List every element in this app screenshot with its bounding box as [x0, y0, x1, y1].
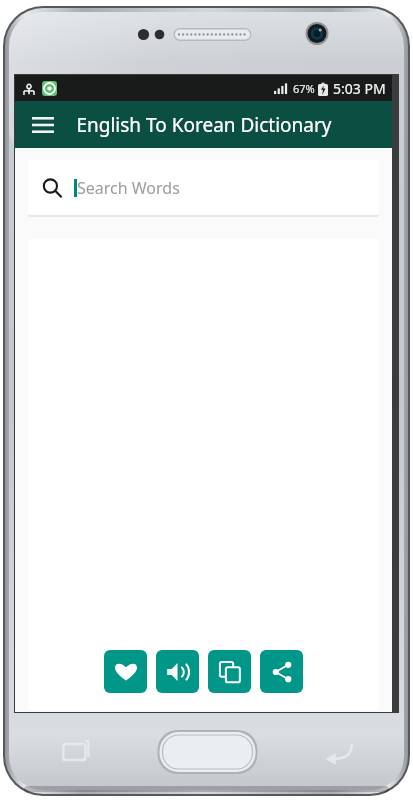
staticText: English To Korean Dictionary [76, 112, 332, 138]
staticText: Search Words [77, 177, 180, 199]
staticText: 5:03 PM [333, 79, 386, 98]
button[interactable]: Share [260, 650, 303, 693]
button[interactable]: Open navigation drawer [23, 105, 63, 145]
button[interactable]: Copy [208, 650, 251, 693]
staticText: 67% [293, 81, 315, 96]
button[interactable]: Add to favourites [104, 650, 147, 693]
button[interactable]: Pronounce [156, 650, 199, 693]
button[interactable]: Search Words [28, 160, 379, 215]
